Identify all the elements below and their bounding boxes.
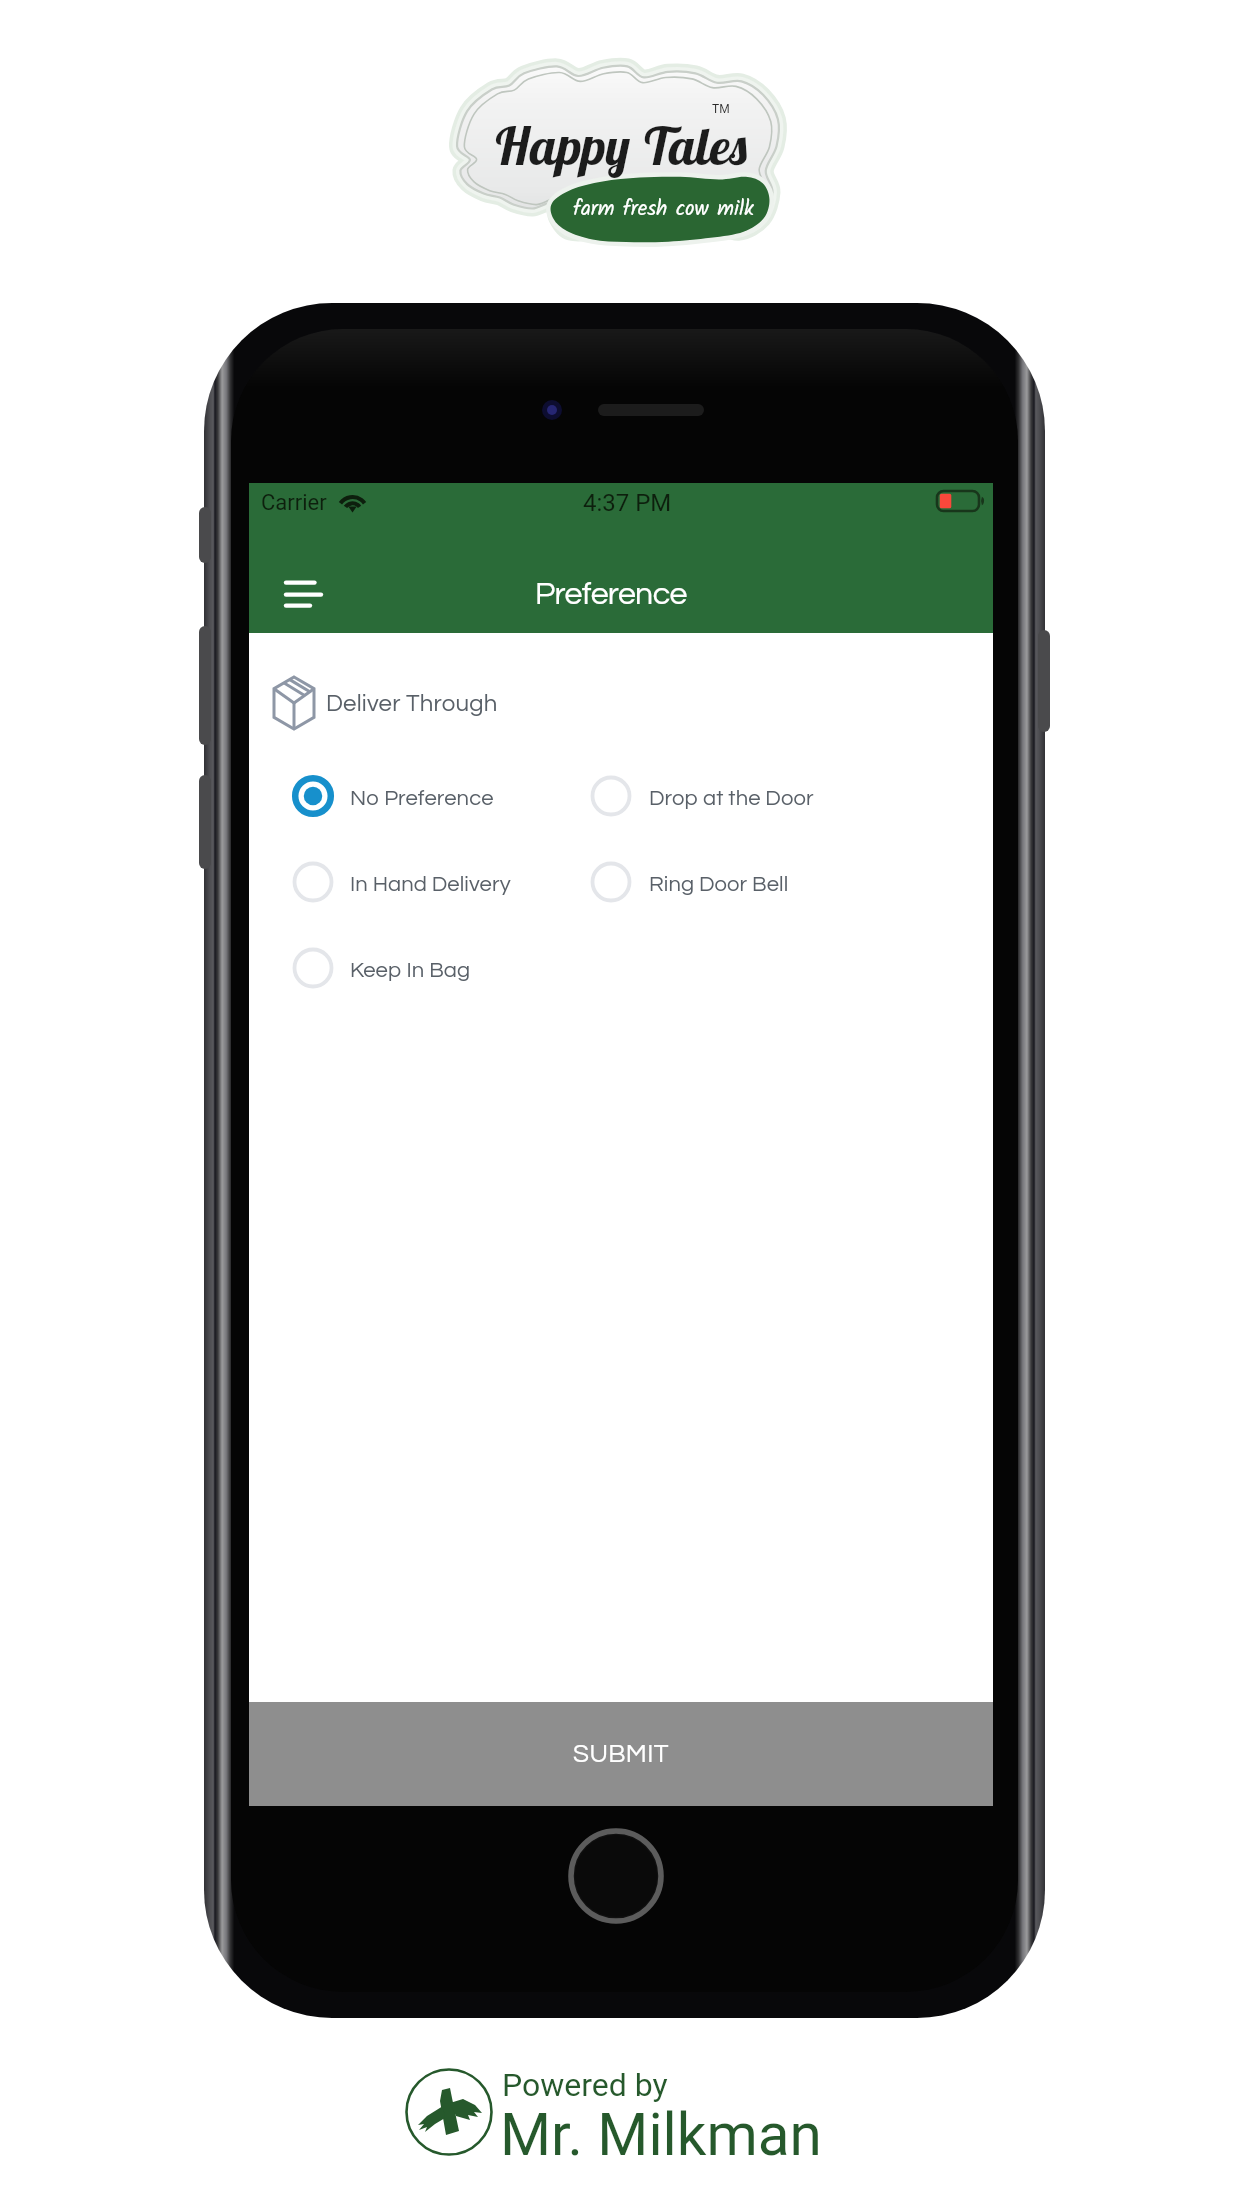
button[interactable]: Keep In Bag (292, 947, 540, 989)
staticText: Happy Tales (493, 113, 750, 178)
button[interactable]: In Hand Delivery (292, 861, 540, 903)
staticText: Preference (535, 578, 687, 611)
other: Wi-Fi (338, 490, 367, 512)
staticText: In Hand Delivery (350, 873, 511, 896)
button[interactable]: SUBMIT (249, 1702, 993, 1806)
staticText: Drop at the Door (649, 787, 814, 810)
staticText: Ring Door Bell (649, 873, 789, 896)
staticText: Keep In Bag (350, 959, 471, 982)
staticText: Mr. Milkman (500, 2101, 822, 2170)
button[interactable]: No Preference (292, 775, 540, 817)
other: Battery low (936, 490, 984, 511)
staticText: Powered by (502, 2066, 668, 2104)
staticText: Carrier (261, 490, 327, 516)
staticText: farm fresh cow milk (573, 193, 754, 226)
staticText: TM (712, 102, 730, 116)
button[interactable]: Ring Door Bell (590, 861, 839, 903)
staticText: SUBMIT (573, 1741, 669, 1768)
staticText: Deliver Through (326, 691, 498, 716)
button[interactable]: Open navigation menu (256, 551, 314, 623)
staticText: No Preference (350, 787, 494, 810)
button[interactable]: Drop at the Door (590, 775, 839, 817)
staticText: 4:37 PM (583, 489, 672, 517)
